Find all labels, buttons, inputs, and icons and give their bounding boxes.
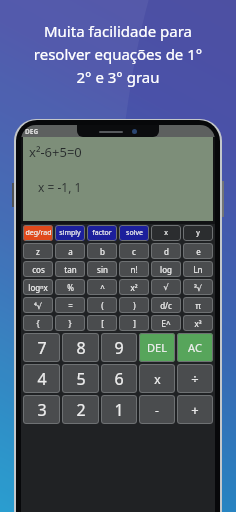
button[interactable]: y [183, 225, 213, 241]
button[interactable]: e [183, 243, 213, 259]
button[interactable]: DEL [139, 333, 175, 362]
button[interactable]: ] [119, 315, 149, 331]
button[interactable]: a [55, 243, 85, 259]
staticText: } [68, 318, 72, 329]
staticText: 4 [37, 368, 47, 390]
staticText: ³√ [194, 282, 202, 293]
staticText: 2 [76, 399, 86, 421]
button[interactable]: d/c [151, 297, 181, 313]
staticText: tan [64, 264, 77, 275]
button[interactable]: - [139, 395, 175, 424]
button[interactable]: [ [87, 315, 117, 331]
staticText: n! [130, 264, 138, 275]
button[interactable]: E^ [151, 315, 181, 331]
staticText: sin [97, 264, 108, 275]
staticText: logⁿx [28, 282, 48, 293]
button[interactable]: } [55, 315, 85, 331]
staticText: 9 [114, 337, 124, 359]
staticText: + [191, 401, 199, 419]
button[interactable]: ⁴√ [23, 297, 53, 313]
button[interactable]: sin [87, 261, 117, 277]
button[interactable]: x [139, 364, 175, 393]
staticText: DEL [147, 340, 167, 355]
button[interactable]: b [87, 243, 117, 259]
button[interactable]: 6 [101, 364, 137, 393]
staticText: 6 [114, 368, 124, 390]
staticText: [ [101, 318, 104, 329]
button[interactable]: cos [23, 261, 53, 277]
button[interactable]: n! [119, 261, 149, 277]
staticText: 8 [76, 337, 86, 359]
button[interactable]: tan [55, 261, 85, 277]
staticText: ÷ [191, 370, 199, 388]
staticText: z [36, 246, 40, 257]
staticText: x²-6+5=0 [29, 143, 82, 161]
button[interactable]: ³√ [183, 279, 213, 295]
button[interactable]: x³ [183, 315, 213, 331]
button[interactable]: 7 [23, 333, 60, 362]
staticText: Muita facilidade para resolver equações … [8, 21, 228, 87]
button[interactable]: x² [119, 279, 149, 295]
button[interactable]: ( [87, 297, 117, 313]
staticText: % [67, 282, 74, 293]
staticText: x² [130, 282, 138, 293]
staticText: simply [59, 228, 81, 238]
button[interactable]: 9 [101, 333, 137, 362]
button[interactable]: = [55, 297, 85, 313]
button[interactable]: + [177, 395, 213, 424]
staticText: log [160, 264, 172, 275]
button[interactable]: 2 [62, 395, 99, 424]
button[interactable]: 5 [62, 364, 99, 393]
button[interactable]: x [151, 225, 181, 241]
staticText: d/c [160, 300, 172, 311]
button[interactable]: AC [177, 333, 213, 362]
staticText: ] [133, 318, 136, 329]
staticText: cos [32, 264, 45, 275]
staticText: x [154, 371, 161, 387]
staticText: y [196, 228, 200, 238]
button[interactable]: log [151, 261, 181, 277]
staticText: e [196, 246, 201, 257]
staticText: ) [133, 300, 136, 311]
staticText: x = -1, 1 [38, 179, 82, 195]
button[interactable]: Ln [183, 261, 213, 277]
staticText: DEG [25, 127, 39, 136]
button[interactable]: z [23, 243, 53, 259]
staticText: 5 [76, 368, 86, 390]
button[interactable]: simply [55, 225, 85, 241]
button[interactable]: 4 [23, 364, 60, 393]
staticText: √ [163, 283, 169, 292]
button[interactable]: 1 [101, 395, 137, 424]
button[interactable]: % [55, 279, 85, 295]
staticText: Ln [193, 264, 203, 275]
staticText: ( [101, 300, 104, 311]
staticText: x [164, 228, 168, 238]
staticText: c [132, 246, 136, 257]
button[interactable]: c [119, 243, 149, 259]
button[interactable]: d [151, 243, 181, 259]
staticText: solve [126, 228, 143, 238]
button[interactable]: ) [119, 297, 149, 313]
button[interactable]: ÷ [177, 364, 213, 393]
button[interactable]: deg/rad [23, 225, 53, 241]
staticText: = [68, 300, 73, 311]
staticText: { [36, 318, 40, 329]
button[interactable]: solve [119, 225, 149, 241]
button[interactable]: ^ [87, 279, 117, 295]
staticText: 3 [37, 399, 47, 421]
button[interactable]: π [183, 297, 213, 313]
staticText: ⁴√ [34, 300, 42, 311]
staticText: x³ [194, 318, 202, 329]
button[interactable]: logⁿx [23, 279, 53, 295]
staticText: b [100, 246, 105, 257]
button[interactable]: factor [87, 225, 117, 241]
button[interactable]: 8 [62, 333, 99, 362]
staticText: E^ [161, 318, 171, 329]
button[interactable]: 3 [23, 395, 60, 424]
staticText: AC [188, 340, 202, 355]
staticText: deg/rad [25, 228, 52, 238]
staticText: 7 [37, 337, 47, 359]
button[interactable]: { [23, 315, 53, 331]
staticText: - [155, 402, 159, 418]
button[interactable]: √ [151, 279, 181, 295]
